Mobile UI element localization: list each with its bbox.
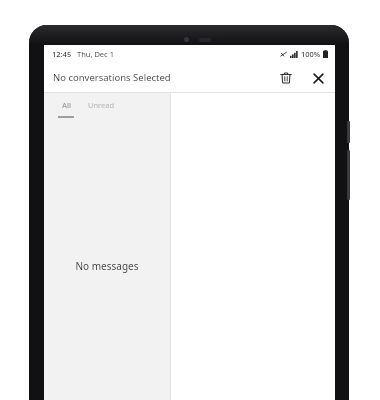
button[interactable]: Unread xyxy=(88,100,115,110)
staticText: All xyxy=(62,100,71,110)
staticText: No messages xyxy=(44,259,170,273)
staticText: No conversations Selected xyxy=(53,71,171,84)
staticText: 12:45 xyxy=(52,49,72,59)
staticText: 100% xyxy=(301,49,321,59)
button[interactable]: Delete xyxy=(273,65,299,91)
staticText: Thu, Dec 1 xyxy=(77,49,114,59)
staticText: Unread xyxy=(88,100,115,110)
button[interactable]: Close xyxy=(305,65,331,91)
button[interactable]: All xyxy=(58,100,74,118)
